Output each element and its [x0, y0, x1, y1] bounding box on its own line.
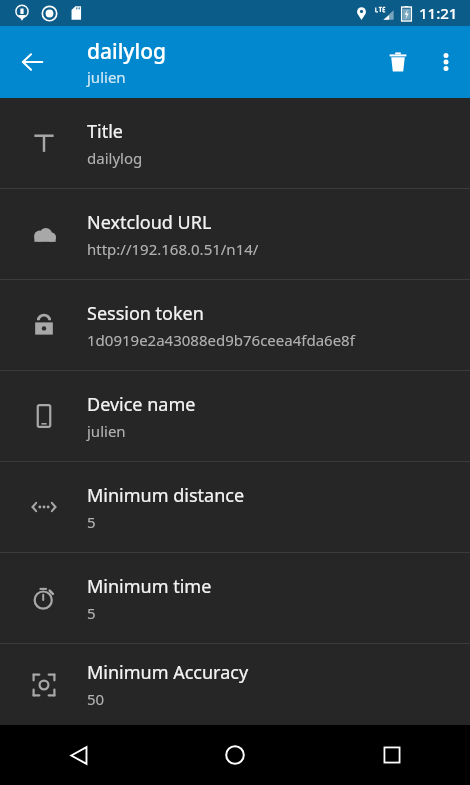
- staticText: Minimum distance: [87, 483, 245, 508]
- staticText: Device name: [87, 392, 196, 417]
- staticText: julien: [87, 421, 126, 441]
- button[interactable]: Minimum time: [0, 553, 470, 643]
- staticText: Nextcloud URL: [87, 210, 212, 235]
- button[interactable]: Nextcloud URL: [0, 189, 470, 279]
- staticText: julien: [87, 67, 126, 87]
- button[interactable]: Device name: [0, 371, 470, 461]
- staticText: 50: [87, 689, 105, 709]
- button[interactable]: Recents: [313, 725, 470, 785]
- staticText: Minimum Accuracy: [87, 660, 249, 685]
- button[interactable]: Minimum distance: [0, 462, 470, 552]
- staticText: Title: [87, 119, 123, 144]
- staticText: http://192.168.0.51/n14/: [87, 239, 259, 259]
- staticText: Minimum time: [87, 574, 212, 599]
- button[interactable]: Back: [0, 725, 156, 785]
- staticText: dailylog: [87, 148, 143, 168]
- staticText: 11:21: [419, 3, 458, 23]
- button[interactable]: Minimum Accuracy: [0, 644, 470, 725]
- button[interactable]: Home: [156, 725, 313, 785]
- staticText: 5: [87, 603, 96, 623]
- staticText: dailylog: [87, 37, 166, 66]
- staticText: 5: [87, 512, 96, 532]
- staticText: Session token: [87, 301, 204, 326]
- button[interactable]: More options: [422, 38, 470, 86]
- staticText: 1d0919e2a43088ed9b76ceea4fda6e8f: [87, 330, 355, 350]
- button[interactable]: Session token: [0, 280, 470, 370]
- button[interactable]: Title: [0, 98, 470, 188]
- button[interactable]: Navigate up: [8, 38, 56, 86]
- button[interactable]: Delete: [374, 38, 422, 86]
